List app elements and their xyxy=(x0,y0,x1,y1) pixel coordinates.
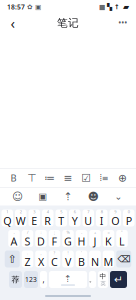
button[interactable]: 2 xyxy=(15,209,26,226)
staticText: 2 xyxy=(20,209,22,214)
staticText: J xyxy=(93,234,96,248)
button[interactable]: Bold xyxy=(6,170,21,185)
staticText: 4 xyxy=(47,209,49,214)
button[interactable]: Insert xyxy=(115,170,130,185)
staticText: . xyxy=(27,250,28,255)
button[interactable]: 1 xyxy=(1,209,13,226)
staticText: W xyxy=(16,214,26,228)
button[interactable] xyxy=(89,250,101,267)
staticText: - xyxy=(81,229,82,235)
button[interactable]: Hide keyboard xyxy=(111,189,126,204)
staticText: = xyxy=(107,229,109,235)
button[interactable]: ' xyxy=(76,250,87,267)
button[interactable]: ? xyxy=(49,250,60,267)
button[interactable]: Emoji xyxy=(10,189,25,204)
staticText: 笔记 xyxy=(57,16,79,29)
button[interactable]: Comma xyxy=(40,271,47,288)
staticText: Q xyxy=(3,214,11,228)
staticText: ☑ xyxy=(81,172,91,184)
button[interactable]: 7 xyxy=(82,209,94,226)
staticText: P xyxy=(126,214,132,228)
staticText: + xyxy=(94,229,96,235)
staticText: G xyxy=(64,234,72,248)
staticText: ☻ xyxy=(88,190,99,202)
button[interactable]: Checklist xyxy=(79,170,94,185)
staticText: ≡ xyxy=(63,172,72,184)
staticText: ▰ xyxy=(120,2,129,12)
button[interactable]: / xyxy=(22,230,33,247)
staticText: 7 xyxy=(87,209,89,214)
staticText: ; xyxy=(54,229,55,235)
staticText: 18:57 xyxy=(7,3,25,11)
button[interactable]: - xyxy=(76,230,87,247)
button[interactable]: Stickers xyxy=(86,189,101,204)
staticText: " xyxy=(121,229,123,235)
button[interactable]: : xyxy=(35,230,47,247)
staticText: ⌄ xyxy=(114,191,122,202)
staticText: ✿ ▣ xyxy=(25,3,41,11)
button[interactable]: Period xyxy=(89,271,96,288)
staticText: C xyxy=(51,255,58,269)
staticText: ⊤ xyxy=(27,172,36,184)
staticText: 9 xyxy=(114,209,116,214)
staticText: V xyxy=(65,255,71,269)
staticText: ▦ ▚ xyxy=(99,3,114,11)
button[interactable]: Text style xyxy=(24,170,39,185)
button[interactable]: 5 xyxy=(55,209,67,226)
button[interactable]: , xyxy=(35,250,47,267)
staticText: Z xyxy=(24,255,30,269)
button[interactable]: ! xyxy=(62,250,74,267)
button[interactable]: Bulleted list xyxy=(60,170,75,185)
button[interactable] xyxy=(103,250,114,267)
staticText: O xyxy=(111,214,119,228)
staticText: B xyxy=(10,172,16,184)
staticText: X xyxy=(38,255,44,269)
button[interactable]: Shift xyxy=(5,250,20,267)
button[interactable]: . xyxy=(22,250,33,267)
button[interactable]: More options xyxy=(115,15,131,31)
staticText: 中 xyxy=(99,272,106,280)
button[interactable]: ; xyxy=(49,230,60,247)
button[interactable]: Numbered list xyxy=(42,170,57,185)
staticText: 。 xyxy=(89,275,96,284)
button[interactable]: Numbers xyxy=(24,271,38,288)
staticText: / xyxy=(27,229,28,235)
staticText: 6 xyxy=(74,209,76,214)
staticText: % xyxy=(66,229,69,235)
button[interactable]: 3 xyxy=(28,209,40,226)
button[interactable]: 6 xyxy=(69,209,80,226)
button[interactable]: % xyxy=(62,230,74,247)
staticText: ‹ xyxy=(10,13,15,33)
button[interactable]: + xyxy=(89,230,101,247)
staticText: U xyxy=(84,214,92,228)
staticText: 英 xyxy=(100,280,105,287)
staticText: N xyxy=(91,255,99,269)
button[interactable]: Suggestions xyxy=(9,271,22,288)
staticText: 0 xyxy=(128,209,130,214)
staticText: 1 xyxy=(6,209,8,214)
button[interactable]: Return xyxy=(110,271,127,288)
button[interactable]: = xyxy=(103,230,114,247)
staticText: F xyxy=(51,234,57,248)
button[interactable]: 9 xyxy=(109,209,121,226)
staticText: ≔ xyxy=(44,172,55,184)
button[interactable]: Back xyxy=(5,15,21,31)
staticText: 5 xyxy=(60,209,62,214)
button[interactable]: 4 xyxy=(42,209,53,226)
button[interactable]: Switch language xyxy=(98,271,108,288)
staticText: ⌫ xyxy=(117,254,130,264)
button[interactable]: Space xyxy=(49,271,87,288)
button[interactable]: - xyxy=(8,230,20,247)
staticText: 荐 xyxy=(11,275,19,284)
button[interactable]: " xyxy=(116,230,128,247)
button[interactable]: Delete xyxy=(116,250,131,267)
button[interactable]: 0 xyxy=(123,209,134,226)
staticText: , xyxy=(42,274,44,285)
button[interactable]: Indent xyxy=(97,170,112,185)
button[interactable]: 8 xyxy=(96,209,107,226)
button[interactable]: Voice input xyxy=(60,189,75,204)
staticText: ⇡ xyxy=(63,190,72,202)
button[interactable]: Insert image xyxy=(35,189,50,204)
staticText: 8 xyxy=(101,209,103,214)
staticText: ⇡ xyxy=(64,273,72,284)
